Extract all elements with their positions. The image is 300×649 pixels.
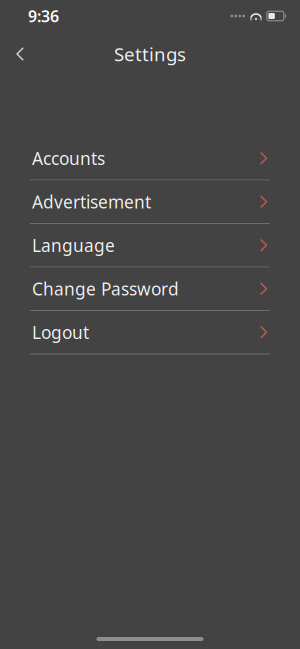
button[interactable]: Change Password: [0, 267, 300, 311]
staticText: Change Password: [32, 277, 179, 300]
staticText: Settings: [114, 42, 186, 66]
staticText: Advertisement: [32, 190, 151, 213]
staticText: Language: [32, 234, 115, 257]
button[interactable]: Language: [0, 224, 300, 267]
button[interactable]: Advertisement: [0, 180, 300, 224]
staticText: Accounts: [32, 147, 105, 170]
button[interactable]: Logout: [0, 311, 300, 354]
staticText: 9:36: [28, 5, 59, 27]
button[interactable]: Accounts: [0, 137, 300, 180]
staticText: Logout: [32, 321, 89, 344]
button[interactable]: Back: [0, 34, 40, 74]
